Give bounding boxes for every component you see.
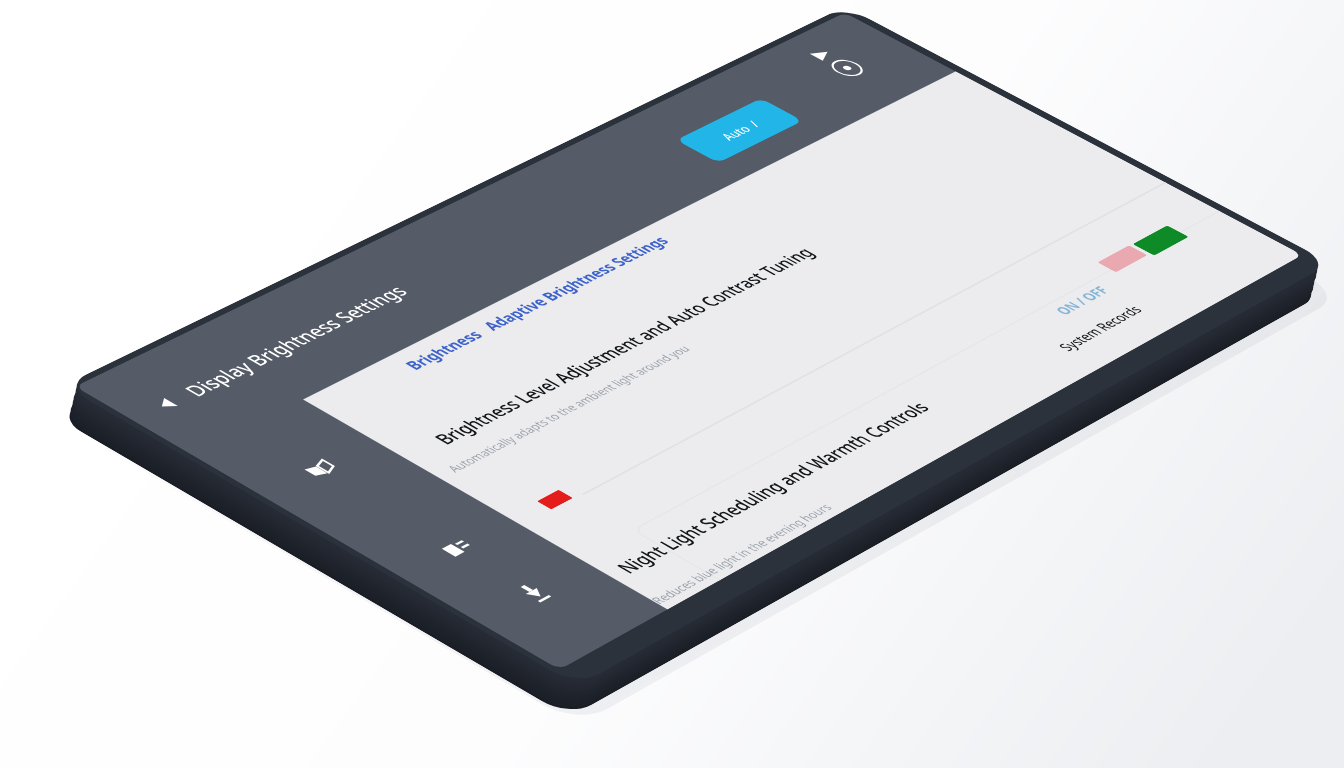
button[interactable]: Notes bbox=[416, 525, 498, 571]
button[interactable]: Library bbox=[277, 445, 359, 490]
button[interactable]: Auto / bbox=[676, 98, 803, 163]
button[interactable]: Downloads bbox=[493, 569, 575, 616]
staticText: Night Light Scheduling and Warmth Contro… bbox=[609, 397, 935, 577]
button[interactable]: Send bbox=[805, 46, 839, 63]
staticText: Automatically adapts to the ambient ligh… bbox=[442, 342, 694, 475]
button[interactable]: Account bbox=[821, 55, 873, 81]
staticText: System Records bbox=[1053, 302, 1148, 354]
staticText: Brightness Adaptive Brightness Settings bbox=[399, 233, 675, 373]
staticText: Brightness Level Adjustment and Auto Con… bbox=[427, 243, 820, 448]
staticText: Reduces blue light in the evening hours bbox=[646, 501, 836, 607]
staticText: Display Brightness Settings bbox=[176, 281, 415, 400]
staticText: Auto / bbox=[716, 118, 765, 143]
button[interactable]: Night Light Scheduling and Warmth Contro… bbox=[587, 215, 1303, 609]
staticText: ON / OFF bbox=[1050, 283, 1114, 318]
button[interactable]: Back bbox=[132, 385, 202, 423]
button[interactable]: Brightness Level Adjustment and Auto Con… bbox=[388, 114, 1117, 497]
